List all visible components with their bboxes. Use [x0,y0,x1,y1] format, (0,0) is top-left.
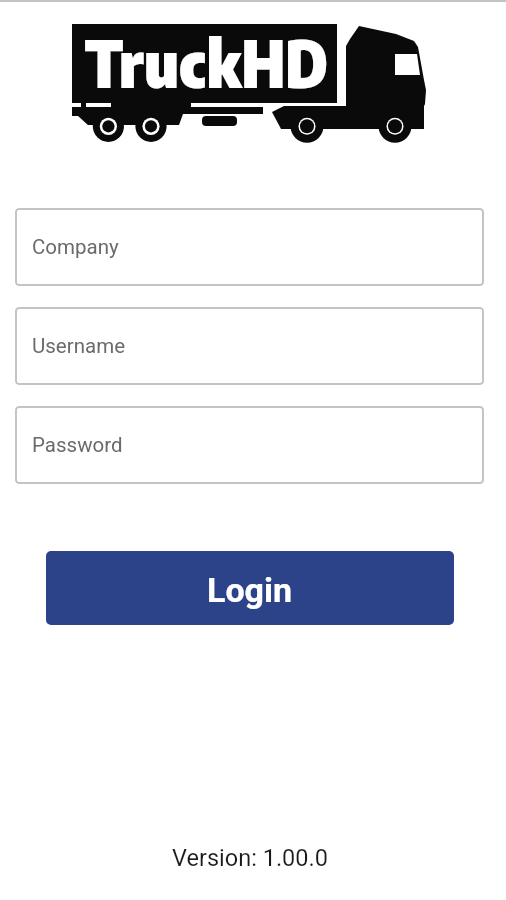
staticText: Login [207,570,293,610]
staticText: Version: 1.00.0 [172,844,328,872]
button[interactable]: Login [46,551,454,625]
button[interactable]: Password [15,406,484,484]
staticText: Password [32,433,123,457]
staticText: Username [32,334,126,358]
button[interactable]: Username [15,307,484,385]
staticText: Company [32,235,119,259]
staticText: TruckHD [85,22,328,102]
button[interactable]: Company [15,208,484,286]
